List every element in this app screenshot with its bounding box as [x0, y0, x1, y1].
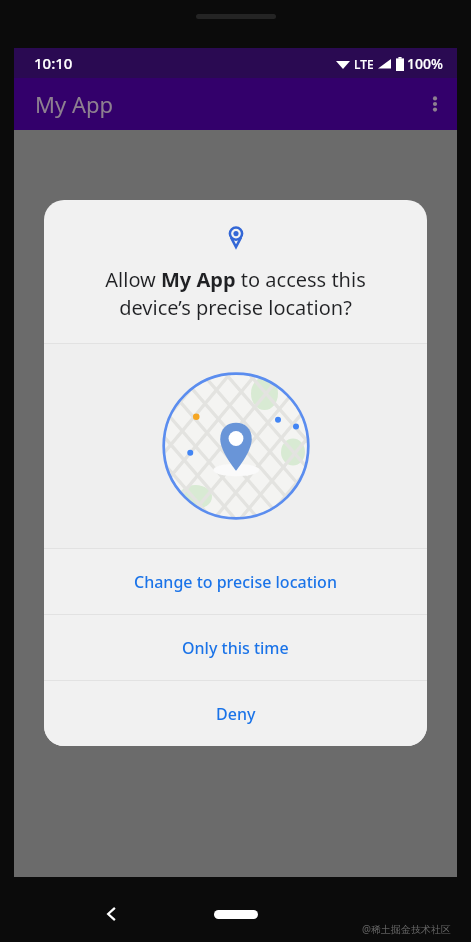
staticText: Only this time — [182, 637, 289, 659]
staticText: Change to precise location — [134, 571, 337, 593]
staticText: Allow My App to access this device’s pre… — [70, 266, 401, 321]
button[interactable]: Deny — [44, 681, 427, 746]
button[interactable]: Back — [92, 894, 132, 934]
button[interactable]: Only this time — [44, 615, 427, 680]
button[interactable]: More options — [413, 82, 457, 126]
button[interactable]: Change to precise location — [44, 549, 427, 614]
staticText: 100% — [407, 54, 443, 73]
staticText: 10:10 — [34, 53, 73, 73]
staticText: LTE — [354, 56, 374, 72]
staticText: Deny — [216, 703, 256, 725]
staticText: @稀土掘金技术社区 — [362, 922, 451, 936]
button[interactable]: Home — [211, 906, 261, 922]
staticText: My App — [35, 89, 114, 119]
